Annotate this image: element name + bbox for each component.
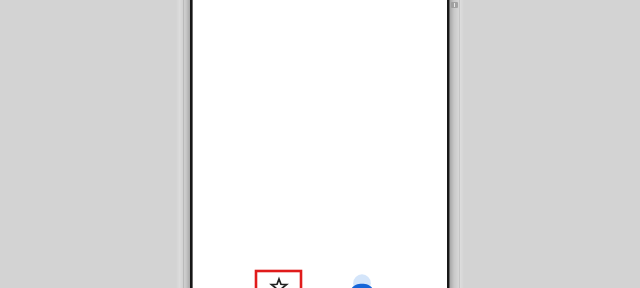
button[interactable]: Library [345,276,379,288]
button[interactable]: Favourites [256,271,301,288]
